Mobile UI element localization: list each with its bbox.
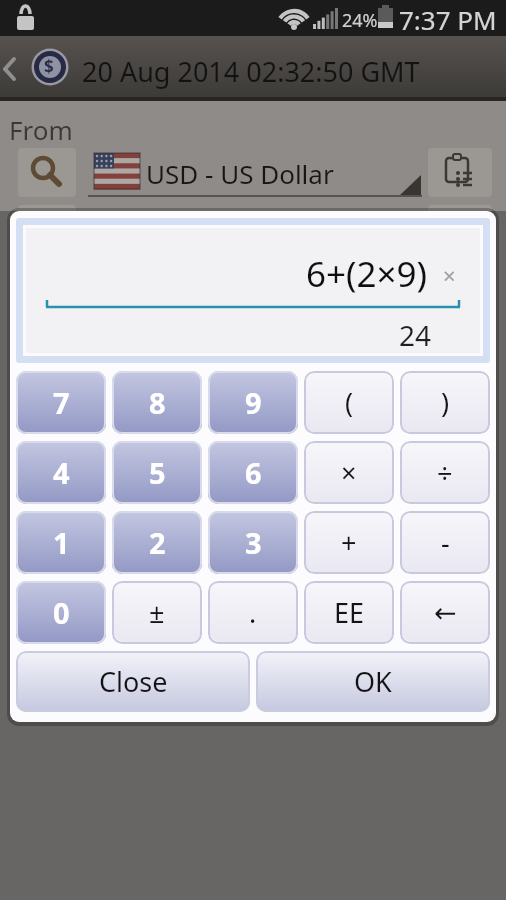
staticText: 24% xyxy=(342,8,378,33)
staticText: 6 xyxy=(245,453,262,492)
staticText: 20 Aug 2014 02:32:50 GMT xyxy=(82,53,420,90)
button[interactable]: × xyxy=(304,441,394,504)
staticText: 6+(2×9) xyxy=(306,250,428,298)
staticText: 0 xyxy=(53,593,70,632)
button[interactable]: 1 xyxy=(16,511,106,574)
button[interactable]: ← xyxy=(400,581,490,644)
staticText: ← xyxy=(434,597,457,628)
staticText: $ xyxy=(44,55,54,78)
staticText: ( xyxy=(345,384,354,421)
button[interactable] xyxy=(428,148,492,197)
button[interactable]: 0 xyxy=(16,581,106,644)
staticText: 24 xyxy=(399,316,432,353)
button[interactable]: EE xyxy=(304,581,394,644)
staticText: 7:37 PM xyxy=(399,2,497,37)
staticText: × xyxy=(443,260,456,290)
button[interactable]: OK xyxy=(256,651,490,712)
button[interactable]: 4 xyxy=(16,441,106,504)
button[interactable]: . xyxy=(208,581,298,644)
staticText: 2 xyxy=(149,523,166,562)
staticText: . xyxy=(249,594,257,631)
staticText: 7 xyxy=(53,383,70,422)
button[interactable]: ÷ xyxy=(400,441,490,504)
staticText: 5 xyxy=(149,453,166,492)
button[interactable]: 2 xyxy=(112,511,202,574)
staticText: ) xyxy=(441,384,450,421)
staticText: ÷ xyxy=(437,454,453,491)
button[interactable] xyxy=(18,148,76,197)
button[interactable]: 5 xyxy=(112,441,202,504)
staticText: 3 xyxy=(245,523,262,562)
button[interactable]: 7 xyxy=(16,371,106,434)
button[interactable]: 6 xyxy=(208,441,298,504)
button[interactable]: ) xyxy=(400,371,490,434)
staticText: From xyxy=(9,112,73,147)
staticText: Close xyxy=(99,663,168,700)
staticText: - xyxy=(441,524,450,561)
button[interactable]: ± xyxy=(112,581,202,644)
staticText: × xyxy=(341,454,357,491)
staticText: EE xyxy=(334,594,365,631)
button[interactable]: 9 xyxy=(208,371,298,434)
button[interactable]: - xyxy=(400,511,490,574)
staticText: OK xyxy=(354,663,392,700)
button[interactable]: + xyxy=(304,511,394,574)
button[interactable]: $ xyxy=(0,36,506,101)
button[interactable]: ( xyxy=(304,371,394,434)
button[interactable]: 8 xyxy=(112,371,202,434)
staticText: USD - US Dollar xyxy=(146,156,334,191)
staticText: + xyxy=(341,524,357,561)
staticText: 9 xyxy=(245,383,262,422)
staticText: ± xyxy=(149,594,165,631)
staticText: 4 xyxy=(53,453,70,492)
staticText: 8 xyxy=(149,383,166,422)
staticText: 1 xyxy=(53,523,70,562)
button[interactable]: Close xyxy=(16,651,250,712)
button[interactable]: 3 xyxy=(208,511,298,574)
